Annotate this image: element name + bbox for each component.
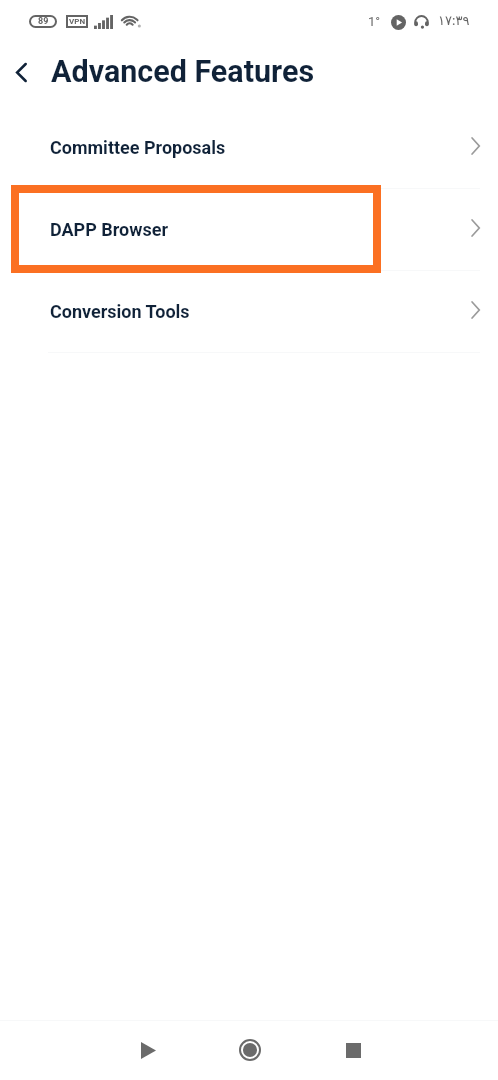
staticText: Committee Proposals [50, 137, 226, 158]
staticText: VPN [69, 17, 86, 26]
button[interactable]: Conversion Tools [0, 271, 498, 352]
button[interactable]: Recents [329, 1026, 377, 1074]
staticText: 89 [38, 16, 49, 27]
button[interactable]: Home [226, 1026, 274, 1074]
staticText: DAPP Browser [50, 219, 169, 240]
staticText: Conversion Tools [50, 301, 190, 322]
button[interactable]: Back [124, 1026, 172, 1074]
button[interactable]: Back [6, 57, 36, 87]
staticText: Advanced Features [51, 54, 315, 90]
staticText: ۱۷:۳۹ [438, 13, 470, 28]
staticText: 1° [368, 14, 381, 29]
button[interactable]: DAPP Browser [0, 189, 498, 270]
button[interactable]: Committee Proposals [0, 107, 498, 188]
